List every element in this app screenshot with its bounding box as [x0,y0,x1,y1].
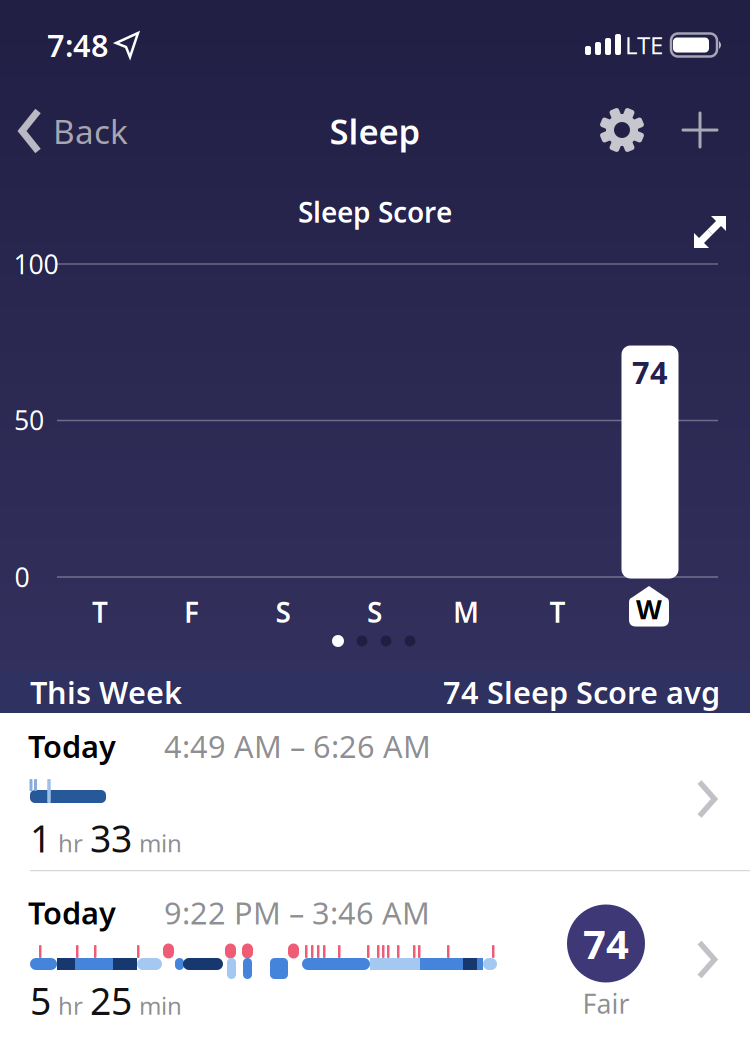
button[interactable]: Add [678,108,722,152]
staticText: LTE [625,29,663,61]
staticText: W [635,593,662,631]
button[interactable]: Today [0,871,750,1036]
staticText: Fair [582,986,629,1021]
staticText: S [275,593,290,631]
staticText: W [636,591,662,627]
staticText: 25 [90,976,132,1025]
staticText: Back [53,109,128,153]
staticText: 33 [90,813,132,863]
staticText: 4:49 AM – 6:26 AM [164,726,431,766]
staticText: 9:22 PM – 3:46 AM [164,892,430,933]
button[interactable]: Settings [599,107,645,153]
staticText: 50 [14,402,44,438]
staticText: Today [28,892,116,933]
staticText: min [139,989,182,1021]
staticText: M [453,593,479,631]
staticText: 0 [14,559,29,595]
button[interactable]: Expand chart [693,215,729,251]
staticText: F [184,593,199,631]
staticText: 74 [583,917,629,970]
staticText: hr [58,827,83,859]
staticText: T [92,593,108,631]
staticText: 1 [30,813,51,863]
staticText: 74 Sleep Score avg [443,672,720,712]
staticText: 100 [13,246,58,282]
staticText: This Week [30,672,182,712]
staticText: Sleep Score [298,193,452,231]
button[interactable]: Today [0,713,750,870]
staticText: T [549,593,565,631]
staticText: S [367,593,382,631]
staticText: min [139,827,182,859]
button[interactable]: Back [18,109,128,153]
staticText: Sleep [329,108,420,154]
staticText: 5 [30,976,51,1025]
staticText: 7:48 [47,25,109,65]
staticText: 74 [632,352,668,392]
staticText: Today [28,726,116,766]
staticText: hr [58,989,83,1021]
